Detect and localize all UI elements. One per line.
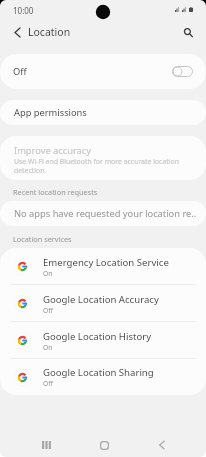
staticText: Off [43,379,53,388]
button[interactable]: Search [176,21,199,44]
staticText: Location [28,25,71,39]
button[interactable]: Improve accuracy [0,136,206,180]
button[interactable]: Google Location Accuracy [0,285,206,322]
staticText: On [43,269,53,278]
staticText: Off [13,65,27,78]
button[interactable]: Navigate up [6,21,29,44]
button[interactable]: Off [0,54,206,89]
staticText: Google Location Accuracy [43,293,159,306]
button[interactable]: Google Location History [0,322,206,359]
button[interactable]: Emergency Location Service [0,248,206,285]
staticText: Recent location requests [13,187,98,197]
staticText: On [43,343,53,352]
staticText: 10:00 [13,5,34,16]
staticText: Use Wi-Fi and Bluetooth for more accurat… [14,157,192,175]
staticText: Google Location History [43,330,152,343]
staticText: No apps have requested your location re.… [14,207,197,220]
staticText: Emergency Location Service [43,256,169,269]
button[interactable]: Back [150,433,174,457]
button[interactable]: Google Location Sharing [0,359,206,395]
staticText: Google Location Sharing [43,366,154,379]
staticText: Improve accuracy [14,144,91,157]
button[interactable]: No apps have requested your location re.… [0,201,206,226]
staticText: Off [43,306,53,315]
button[interactable]: Recent apps [34,433,58,457]
button[interactable]: App permissions [0,100,206,125]
staticText: Location services [13,234,72,244]
staticText: App permissions [14,106,87,119]
button[interactable]: Home [92,433,116,457]
